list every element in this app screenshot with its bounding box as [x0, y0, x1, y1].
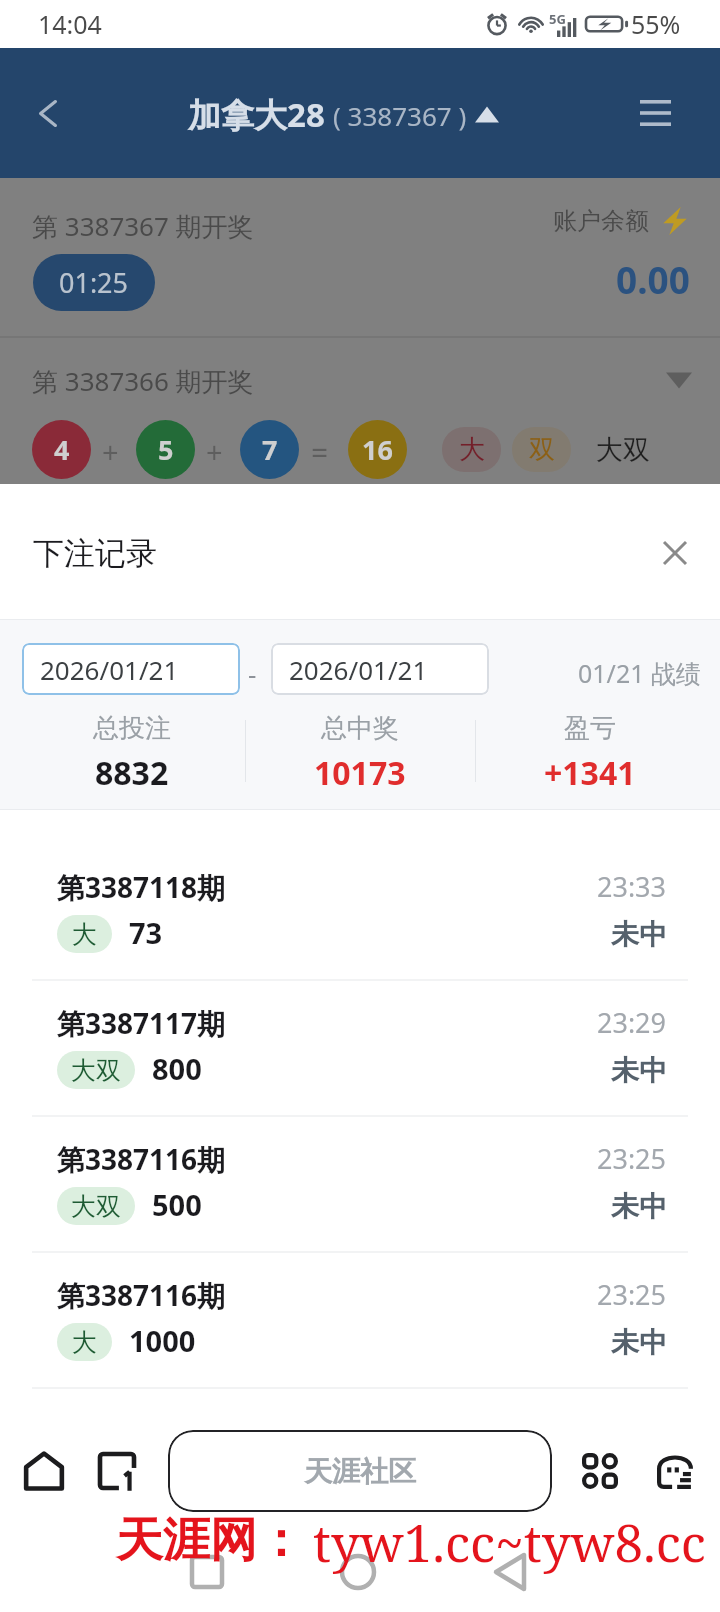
staticText: 总中奖: [321, 712, 399, 745]
staticText: 第3387118期: [57, 868, 226, 906]
staticText: 未中: [611, 1053, 667, 1088]
button[interactable]: Back: [20, 85, 76, 141]
staticText: 01/21 战绩: [578, 656, 702, 690]
staticText: ( 3387367 ): [333, 98, 467, 133]
button[interactable]: 第3387116期: [0, 1253, 720, 1389]
staticText: 10173: [314, 751, 406, 795]
staticText: 5: [158, 431, 174, 468]
staticText: 大: [459, 433, 485, 466]
staticText: 加拿大28: [188, 92, 325, 137]
staticText: 23:25: [597, 1140, 667, 1177]
staticText: 5G: [549, 10, 566, 28]
button[interactable]: Close: [648, 526, 702, 580]
button[interactable]: 01:25: [33, 254, 155, 311]
staticText: 盈亏: [564, 712, 616, 745]
button[interactable]: Menu: [626, 84, 684, 142]
staticText: 800: [152, 1049, 202, 1088]
staticText: =: [311, 432, 329, 473]
button[interactable]: Tabs: [89, 1443, 145, 1499]
staticText: 双: [529, 433, 555, 466]
staticText: +: [102, 432, 119, 471]
staticText: 第 3387367 期开奖: [32, 208, 254, 244]
staticText: 55%: [631, 7, 681, 41]
staticText: 天涯社区: [304, 1454, 416, 1489]
staticText: 4: [54, 431, 70, 468]
staticText: 第3387117期: [57, 1004, 226, 1042]
staticText: 1000: [129, 1321, 196, 1360]
button[interactable]: Home: [16, 1443, 72, 1499]
staticText: 0.00: [616, 254, 690, 304]
staticText: 第3387116期: [57, 1276, 226, 1314]
staticText: 7: [262, 431, 278, 468]
staticText: 500: [152, 1185, 202, 1224]
staticText: 未中: [611, 917, 667, 952]
button[interactable]: Apps: [572, 1443, 628, 1499]
staticText: 大: [72, 919, 97, 950]
button[interactable]: 第3387116期: [0, 1117, 720, 1253]
staticText: 23:33: [597, 868, 667, 905]
staticText: 大双: [71, 1191, 121, 1222]
staticText: 天涯网：: [116, 1511, 304, 1570]
button[interactable]: 第3387118期: [0, 845, 720, 981]
staticText: 总投注: [93, 712, 171, 745]
staticText: 23:25: [597, 1276, 667, 1313]
staticText: 下注记录: [33, 534, 157, 573]
staticText: 大双: [71, 1055, 121, 1086]
staticText: +: [206, 432, 223, 471]
staticText: 8832: [95, 751, 169, 795]
staticText: 16: [362, 431, 393, 468]
staticText: 大双: [596, 433, 650, 467]
button[interactable]: 天涯社区: [168, 1430, 552, 1512]
button[interactable]: 第3387117期: [0, 981, 720, 1117]
button[interactable]: 2026/01/21: [22, 643, 240, 695]
staticText: 大: [72, 1327, 97, 1358]
staticText: 73: [129, 913, 163, 952]
button[interactable]: Profile: [647, 1443, 703, 1499]
staticText: 未中: [611, 1189, 667, 1224]
button[interactable]: 2026/01/21: [271, 643, 489, 695]
staticText: -: [248, 656, 257, 691]
staticText: 账户余额: [553, 206, 649, 236]
staticText: 01:25: [59, 264, 129, 301]
staticText: 第3387116期: [57, 1140, 226, 1178]
staticText: 2026/01/21: [40, 652, 179, 687]
staticText: tyw1.cc~tyw8.cc: [313, 1507, 706, 1576]
staticText: 14:04: [38, 7, 102, 41]
staticText: 未中: [611, 1325, 667, 1360]
staticText: 2026/01/21: [289, 652, 428, 687]
staticText: +1341: [544, 751, 636, 795]
staticText: 23:29: [597, 1004, 667, 1041]
staticText: 第 3387366 期开奖: [32, 363, 254, 399]
